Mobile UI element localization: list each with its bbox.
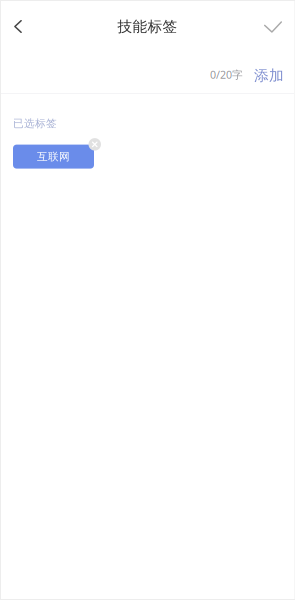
button[interactable]: Back (0, 4, 36, 48)
button[interactable]: 互联网 (13, 145, 94, 169)
button[interactable]: Remove tag 互联网 (88, 138, 101, 151)
staticText: 已选标签 (13, 117, 57, 130)
staticText: 技能标签 (117, 17, 177, 35)
staticText: 0/20字 (210, 67, 243, 82)
button[interactable]: 添加 (243, 59, 295, 91)
staticText: 互联网 (37, 150, 70, 163)
staticText: 添加 (254, 66, 284, 84)
button[interactable]: Done (251, 5, 295, 49)
